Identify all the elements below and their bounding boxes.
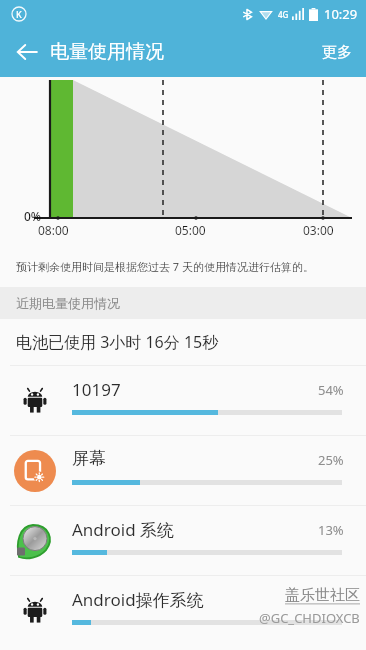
staticText: 10197: [72, 378, 121, 401]
staticText: 25%: [318, 451, 344, 469]
staticText: Android 系统: [72, 518, 175, 541]
button[interactable]: 更多: [308, 35, 366, 70]
staticText: 4G: [278, 9, 289, 20]
staticText: K: [16, 8, 22, 20]
staticText: 08:00: [38, 222, 69, 238]
staticText: @GC_CHDIOXCB: [259, 609, 360, 627]
button[interactable]: Android操作系统: [0, 575, 366, 645]
staticText: 盖乐世社区: [285, 586, 360, 605]
staticText: Android操作系统: [72, 588, 204, 611]
button[interactable]: Back: [6, 31, 48, 73]
staticText: 13%: [318, 521, 344, 539]
staticText: 近期电量使用情况: [16, 295, 120, 311]
staticText: 电量使用情况: [50, 40, 164, 64]
staticText: 54%: [318, 381, 344, 399]
staticText: 屏幕: [72, 448, 106, 469]
staticText: 03:00: [303, 222, 334, 238]
button[interactable]: Android 系统: [0, 505, 366, 575]
staticText: 更多: [322, 43, 352, 62]
button[interactable]: 10197: [0, 365, 366, 435]
button[interactable]: 屏幕: [0, 435, 366, 505]
staticText: 预计剩余使用时间是根据您过去 7 天的使用情况进行估算的。: [16, 259, 315, 274]
button[interactable]: 电池已使用 3小时 16分 15秒: [0, 319, 366, 365]
staticText: 05:00: [175, 222, 206, 238]
staticText: 电池已使用 3小时 16分 15秒: [16, 331, 219, 353]
staticText: 0%: [24, 208, 42, 224]
staticText: 10:29: [324, 5, 358, 23]
